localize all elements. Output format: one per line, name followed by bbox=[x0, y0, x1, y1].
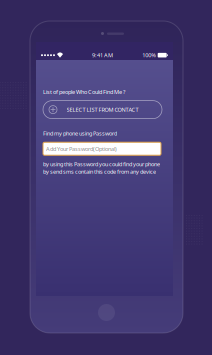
staticText: List of people Who Could Find Me ? bbox=[43, 88, 125, 96]
staticText: 9:41 AM bbox=[92, 51, 113, 59]
staticText: by using this Password you could find yo… bbox=[43, 160, 160, 168]
staticText: by send sms contain this code from any d… bbox=[43, 168, 156, 175]
staticText: SELECT LIST FROM CONTACT bbox=[66, 106, 138, 113]
button[interactable]: SELECT LIST FROM CONTACT bbox=[43, 101, 162, 119]
staticText: Find my phone using Password bbox=[43, 130, 117, 137]
staticText: 100% bbox=[142, 51, 156, 59]
staticText: Add Your Password(Optional) bbox=[46, 145, 117, 152]
button[interactable]: Add Your Password(Optional) bbox=[43, 142, 161, 155]
